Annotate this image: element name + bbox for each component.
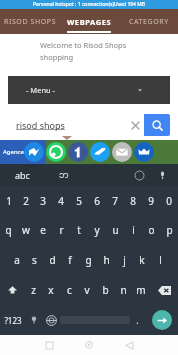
- button[interactable]: v: [78, 275, 96, 305]
- staticText: - Menu -: [26, 85, 56, 95]
- staticText: Welcome to Risod Shops: [40, 40, 127, 50]
- staticText: v: [84, 283, 90, 297]
- staticText: w: [22, 223, 30, 237]
- button[interactable]: Back: [109, 335, 149, 355]
- button[interactable]: n: [114, 275, 132, 305]
- staticText: m: [136, 283, 146, 297]
- button[interactable]: q: [0, 215, 17, 245]
- button[interactable]: CATEGORY: [119, 9, 178, 34]
- button[interactable]: u: [106, 215, 124, 245]
- staticText: 0: [166, 194, 172, 208]
- button[interactable]: Change language: [42, 305, 60, 335]
- staticText: t: [77, 223, 81, 237]
- button[interactable]: RISOD SHOPS: [0, 9, 60, 34]
- button[interactable]: Help: [128, 164, 150, 186]
- staticText: r: [59, 223, 64, 237]
- button[interactable]: j: [115, 245, 133, 275]
- button[interactable]: 8: [124, 186, 142, 215]
- staticText: x: [48, 283, 54, 297]
- staticText: p: [166, 223, 173, 237]
- button[interactable]: ?123: [0, 305, 25, 335]
- staticText: e: [40, 223, 46, 237]
- button[interactable]: 1: [0, 186, 17, 215]
- button[interactable]: z: [24, 275, 42, 305]
- button[interactable]: risod shops: [8, 114, 126, 136]
- button[interactable]: r: [52, 215, 70, 245]
- button[interactable]: f: [61, 245, 79, 275]
- button[interactable]: b: [96, 275, 114, 305]
- button[interactable]: More: [134, 142, 154, 162]
- button[interactable]: c: [60, 275, 78, 305]
- button[interactable]: abc: [0, 164, 44, 186]
- staticText: z: [31, 283, 36, 297]
- button[interactable]: WEBPAGES: [60, 9, 119, 34]
- button[interactable]: Clear search: [126, 116, 144, 134]
- staticText: 5: [76, 194, 82, 208]
- staticText: 7: [112, 194, 118, 208]
- button[interactable]: y: [88, 215, 106, 245]
- button[interactable]: 4: [52, 186, 70, 215]
- button[interactable]: s: [25, 245, 43, 275]
- staticText: n: [120, 283, 127, 297]
- staticText: d: [49, 253, 56, 267]
- staticText: 6: [94, 194, 100, 208]
- button[interactable]: p: [160, 215, 178, 245]
- button[interactable]: Search: [144, 114, 170, 136]
- button[interactable]: Home: [69, 335, 109, 355]
- button[interactable]: Voice input: [150, 164, 174, 186]
- button[interactable]: Email: [112, 142, 132, 162]
- button[interactable]: 5: [70, 186, 88, 215]
- button[interactable]: m: [132, 275, 150, 305]
- button[interactable]: g: [79, 245, 97, 275]
- button[interactable]: .: [130, 305, 145, 335]
- staticText: Agence: [3, 148, 24, 156]
- button[interactable]: Facebook: [68, 142, 88, 162]
- button[interactable]: Twitter: [90, 142, 110, 162]
- button[interactable]: Enter: [145, 305, 178, 335]
- staticText: ဘ: [59, 168, 69, 183]
- button[interactable]: w: [17, 215, 34, 245]
- staticText: i: [132, 223, 135, 237]
- button[interactable]: e: [34, 215, 52, 245]
- button[interactable]: Shift: [0, 275, 24, 305]
- staticText: 8: [130, 194, 136, 208]
- button[interactable]: 6: [88, 186, 106, 215]
- button[interactable]: Messenger: [24, 142, 44, 162]
- button[interactable]: 3: [34, 186, 52, 215]
- button[interactable]: l: [151, 245, 169, 275]
- button[interactable]: o: [142, 215, 160, 245]
- staticText: risod shops: [16, 119, 65, 131]
- button[interactable]: 9: [142, 186, 160, 215]
- button[interactable]: Recents: [29, 335, 69, 355]
- button[interactable]: Emoji: [25, 305, 42, 335]
- button[interactable]: x: [42, 275, 60, 305]
- button[interactable]: a: [8, 245, 25, 275]
- staticText: 3: [40, 194, 46, 208]
- button[interactable]: - Menu -: [8, 76, 170, 104]
- button[interactable]: h: [97, 245, 115, 275]
- staticText: Personal hotspot : 1 connection(s)Used 1…: [33, 1, 146, 8]
- button[interactable]: t: [70, 215, 88, 245]
- staticText: s: [32, 253, 37, 267]
- staticText: shopping: [40, 52, 74, 62]
- button[interactable]: 7: [106, 186, 124, 215]
- staticText: b: [102, 283, 109, 297]
- staticText: c: [67, 283, 72, 297]
- staticText: a: [14, 253, 20, 267]
- staticText: abc: [15, 169, 30, 181]
- button[interactable]: d: [43, 245, 61, 275]
- staticText: 9: [148, 194, 154, 208]
- button[interactable]: k: [133, 245, 151, 275]
- staticText: j: [123, 253, 126, 267]
- button[interactable]: 2: [17, 186, 34, 215]
- button[interactable]: Backspace: [150, 275, 178, 305]
- staticText: y: [94, 223, 100, 237]
- staticText: .: [136, 314, 139, 326]
- staticText: o: [148, 223, 155, 237]
- button[interactable]: ဘ: [44, 164, 84, 186]
- button[interactable]: WhatsApp: [46, 142, 66, 162]
- button[interactable]: i: [124, 215, 142, 245]
- button[interactable]: Space: [60, 310, 130, 330]
- button[interactable]: 0: [160, 186, 178, 215]
- staticText: f: [68, 253, 72, 267]
